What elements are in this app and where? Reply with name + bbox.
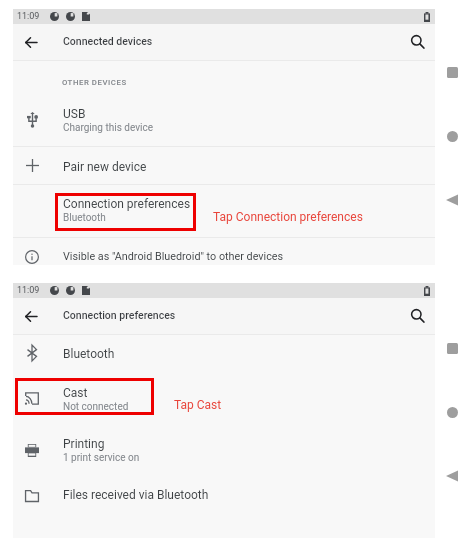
button[interactable]: Bluetooth [13, 335, 435, 377]
button[interactable]: Home [447, 131, 458, 142]
button[interactable]: Search [400, 298, 436, 334]
staticText: Tap Connection preferences [213, 210, 363, 224]
staticText: OTHER DEVICES [62, 78, 127, 87]
staticText: 11:09 [17, 11, 40, 22]
staticText: 11:09 [17, 285, 40, 296]
staticText: Connection preferences [63, 197, 191, 211]
staticText: USB [63, 107, 86, 121]
staticText: Visible as "Android Bluedroid" to other … [63, 250, 284, 263]
staticText: Files received via Bluetooth [63, 488, 209, 502]
button[interactable]: Back [13, 298, 48, 334]
staticText: Connected devices [63, 35, 153, 47]
button[interactable]: Back [446, 194, 458, 206]
staticText: Cast [63, 386, 88, 400]
staticText: Charging this device [63, 122, 153, 134]
staticText: 1 print service on [63, 452, 140, 464]
button[interactable]: Recents [447, 67, 458, 78]
button[interactable]: Search [400, 24, 436, 60]
button[interactable]: Cast [13, 378, 435, 416]
button[interactable]: Files received via Bluetooth [13, 479, 435, 511]
button[interactable]: Back [13, 24, 48, 60]
button[interactable]: Connection preferences [13, 185, 435, 237]
staticText: Printing [63, 437, 105, 451]
button[interactable]: Printing [13, 428, 435, 468]
button[interactable]: Visible as "Android Bluedroid" to other … [13, 238, 435, 265]
staticText: Pair new device [63, 160, 147, 174]
button[interactable]: Recents [447, 343, 458, 354]
staticText: Not connected [63, 401, 129, 413]
button[interactable]: USB [13, 101, 435, 145]
staticText: Tap Cast [174, 398, 222, 412]
button[interactable]: Home [447, 407, 458, 418]
staticText: Bluetooth [63, 347, 115, 361]
staticText: Bluetooth [63, 212, 106, 224]
staticText: Connection preferences [63, 309, 176, 321]
button[interactable]: Back [446, 470, 458, 482]
button[interactable]: Pair new device [13, 146, 435, 184]
